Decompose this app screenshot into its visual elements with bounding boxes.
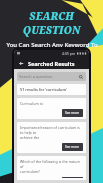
staticText: You Can Search Any Keyword To: [6, 41, 98, 49]
staticText: Which of the following is the nature of …: [20, 159, 83, 174]
button[interactable]: 51 results for 'curriculum': [17, 84, 86, 95]
staticText: See more: [65, 111, 80, 115]
button[interactable]: Importance/reason of curriculum is to he…: [17, 122, 86, 153]
button[interactable]: Back: [18, 60, 25, 67]
staticText: See more: [65, 145, 80, 149]
button[interactable]: Which of the following is the nature of …: [17, 156, 86, 180]
staticText: Importance/reason of curriculum is to he…: [20, 125, 83, 140]
button[interactable]: See more: [62, 109, 83, 117]
staticText: Search a question: [19, 74, 53, 79]
button[interactable]: Curriculum is:: [17, 98, 86, 119]
staticText: 51 results for 'curriculum': [20, 87, 68, 92]
button[interactable]: Search a question: [17, 72, 86, 81]
staticText: Searched Results: [28, 60, 75, 67]
staticText: SEARCH QUESTION: [4, 9, 99, 37]
button[interactable]: Search: [78, 74, 84, 80]
staticText: Curriculum is:: [20, 101, 44, 106]
staticText: 4:05 pm: [62, 51, 76, 56]
button[interactable]: See more: [62, 143, 83, 151]
staticText: Get Related Questions: [19, 49, 84, 57]
button[interactable]: See more: [62, 177, 83, 178]
